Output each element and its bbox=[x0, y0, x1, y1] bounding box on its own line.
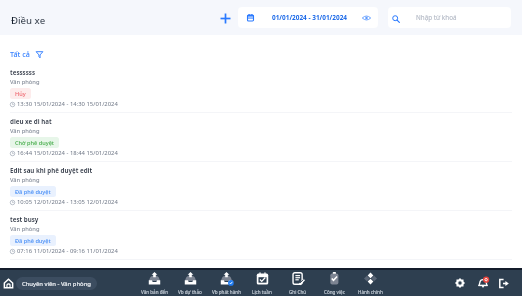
button[interactable]: Trang chủ bbox=[2, 277, 15, 290]
staticText: Lịch tuần bbox=[252, 289, 272, 295]
staticText: Vb dự thảo bbox=[178, 289, 202, 295]
staticText: Văn phòng bbox=[10, 78, 40, 86]
button[interactable]: Ghi Chú bbox=[280, 270, 316, 296]
staticText: Điều xe bbox=[11, 14, 46, 27]
button[interactable]: Thêm mới bbox=[216, 9, 234, 27]
button[interactable]: Lịch tuần bbox=[244, 270, 280, 296]
button[interactable]: Vb phát hành bbox=[208, 270, 244, 296]
staticText: 13:30 15/01/2024 - 14:30 15/01/2024 bbox=[17, 100, 118, 108]
button[interactable]: Thông báo bbox=[475, 275, 491, 291]
staticText: 16:44 15/01/2024 - 18:44 15/01/2024 bbox=[17, 149, 118, 157]
button[interactable]: Hành chính bbox=[352, 270, 388, 296]
button[interactable]: Xem bbox=[360, 12, 372, 24]
staticText: Edit sau khi phê duyệt edit bbox=[10, 166, 93, 174]
staticText: Văn bản đến bbox=[141, 289, 168, 295]
staticText: 07:16 11/01/2024 - 09:16 11/01/2024 bbox=[17, 247, 118, 255]
button[interactable]: tessssss bbox=[0, 64, 522, 113]
staticText: Đã phê duyệt bbox=[15, 188, 51, 196]
staticText: Đã phê duyệt bbox=[15, 237, 51, 245]
button[interactable]: dieu xe di hat bbox=[0, 113, 522, 162]
button[interactable]: Nhập từ khoá bbox=[388, 7, 511, 28]
staticText: Văn phòng bbox=[10, 225, 40, 233]
button[interactable]: Đăng xuất bbox=[496, 275, 512, 291]
button[interactable]: Chuyên viên - Văn phòng bbox=[16, 277, 97, 290]
staticText: 10:05 12/01/2024 - 13:05 12/01/2024 bbox=[17, 198, 118, 206]
button[interactable]: Công việc bbox=[316, 270, 352, 296]
staticText: Văn phòng bbox=[10, 127, 40, 135]
staticText: 01/01/2024 - 31/01/2024 bbox=[272, 13, 348, 22]
staticText: dieu xe di hat bbox=[10, 117, 52, 125]
button[interactable]: Cài đặt bbox=[452, 275, 468, 291]
staticText: Nhập từ khoá bbox=[416, 13, 457, 22]
staticText: Hành chính bbox=[358, 289, 383, 295]
staticText: Ghi Chú bbox=[289, 289, 307, 295]
button[interactable]: Vb dự thảo bbox=[172, 270, 208, 296]
button[interactable]: Edit sau khi phê duyệt edit bbox=[0, 162, 522, 211]
staticText: Hủy bbox=[15, 90, 26, 98]
staticText: Tất cả bbox=[10, 49, 30, 59]
button[interactable]: Tất cả bbox=[10, 49, 43, 59]
button[interactable]: test busy bbox=[0, 211, 522, 260]
button[interactable]: Văn bản đến bbox=[136, 270, 172, 296]
staticText: Văn phòng bbox=[10, 176, 40, 184]
staticText: Chuyên viên - Văn phòng bbox=[22, 280, 91, 288]
staticText: test busy bbox=[10, 215, 39, 223]
button[interactable]: 01/01/2024 - 31/01/2024 bbox=[238, 7, 378, 28]
staticText: Chờ phê duyệt bbox=[15, 139, 54, 147]
staticText: tessssss bbox=[10, 68, 36, 76]
staticText: Công việc bbox=[324, 289, 345, 295]
staticText: Vb phát hành bbox=[212, 289, 241, 295]
